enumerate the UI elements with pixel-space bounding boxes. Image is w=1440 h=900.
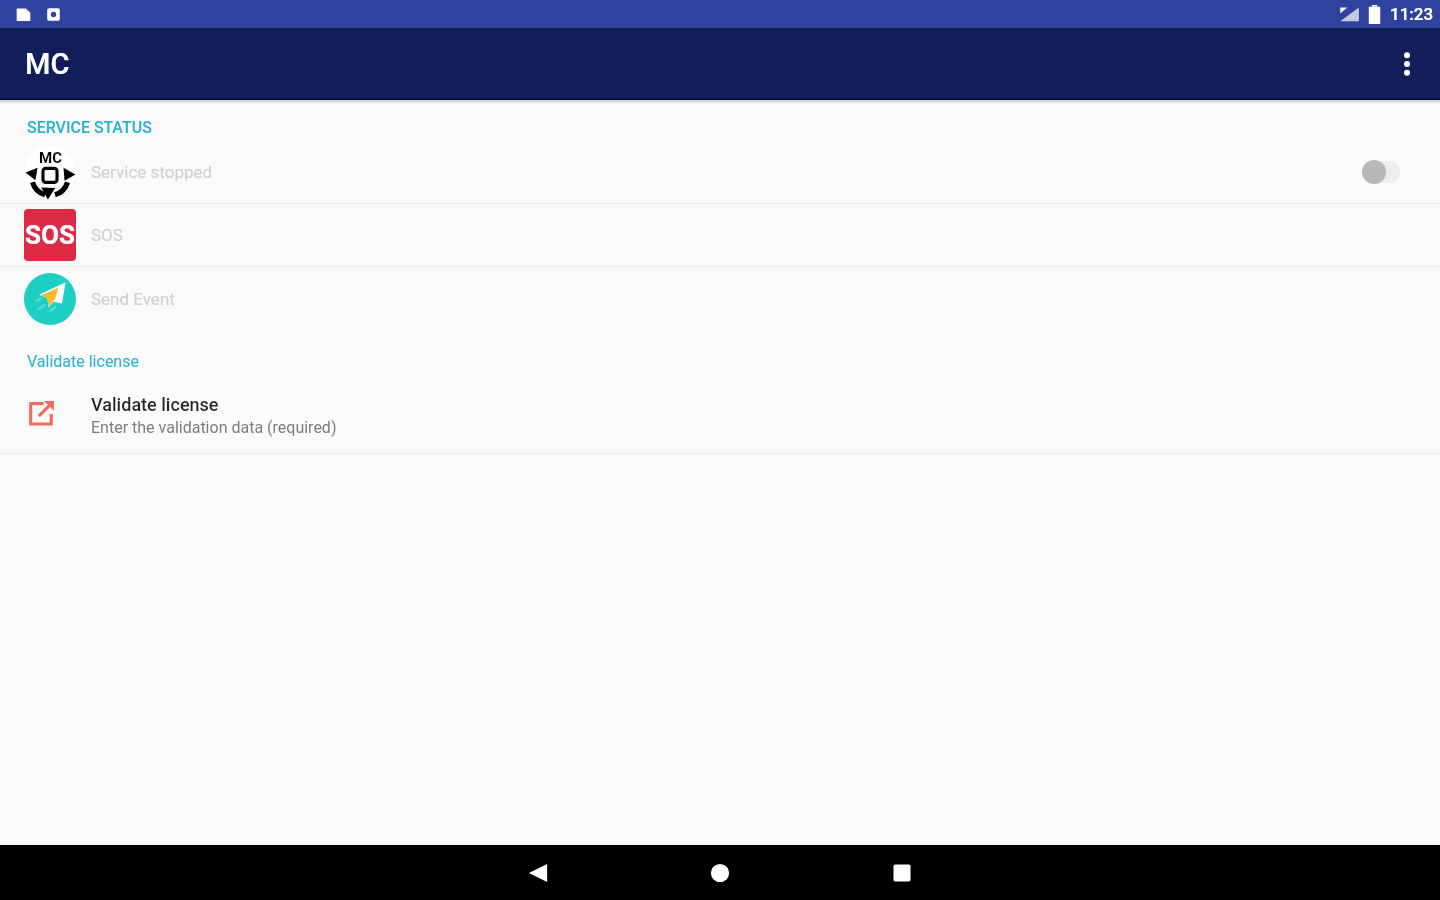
button[interactable]: Recent apps [811,845,993,900]
staticText: Send Event [91,289,175,309]
staticText: Validate license [91,394,219,415]
button[interactable]: MC [0,141,1440,203]
staticText: Service stopped [91,162,213,182]
button[interactable]: Validate license [0,378,1440,453]
staticText: Validate license [27,352,139,371]
staticText: 11:23 [1390,4,1434,24]
button[interactable]: Toggle service [1362,160,1400,184]
button[interactable]: More options [1383,40,1431,88]
button[interactable]: SOS [0,204,1440,266]
button[interactable]: Back [447,845,629,900]
button[interactable]: Home [629,845,811,900]
staticText: Enter the validation data (required) [91,418,337,437]
staticText: MC [39,149,62,167]
staticText: SERVICE STATUS [27,118,152,137]
staticText: SOS [25,220,75,250]
staticText: SOS [91,225,123,245]
staticText: MC [25,47,70,81]
button[interactable]: Send Event [0,267,1440,330]
